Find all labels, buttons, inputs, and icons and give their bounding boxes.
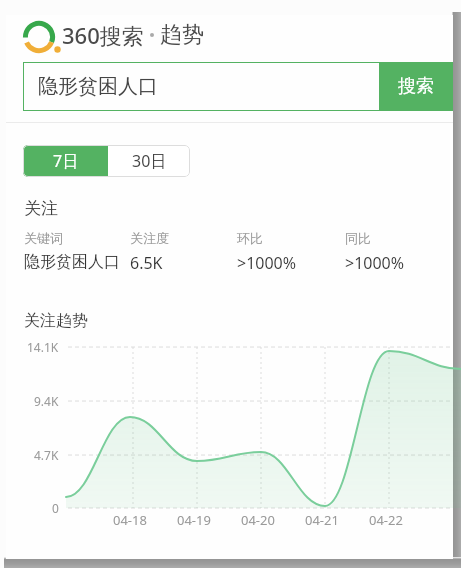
button[interactable]: 7日 (23, 145, 108, 177)
staticText: 04-22 (369, 511, 403, 529)
staticText: 关注趋势 (24, 311, 88, 331)
staticText: 4.7K (34, 447, 59, 463)
staticText: 6.5K (130, 252, 163, 274)
button[interactable]: 搜索 (379, 62, 453, 111)
staticText: 同比 (345, 230, 371, 246)
staticText: 关注 (24, 198, 58, 219)
staticText: 搜索 (398, 75, 434, 98)
staticText: 关键词 (24, 230, 63, 246)
staticText: 04-18 (113, 511, 147, 529)
staticText: 隐形贫困人口 (38, 74, 379, 99)
staticText: 关注度 (130, 230, 169, 246)
staticText: 14.1K (27, 339, 59, 355)
staticText: 趋势 (160, 21, 204, 49)
staticText: 环比 (237, 230, 263, 246)
staticText: 隐形贫困人口 (24, 252, 120, 272)
button[interactable]: 30日 (108, 145, 190, 177)
staticText: 9.4K (34, 393, 59, 409)
staticText: >1000% (345, 252, 405, 274)
staticText: 04-21 (305, 511, 339, 529)
staticText: 30日 (132, 150, 167, 172)
staticText: 0 (52, 500, 59, 516)
staticText: 04-20 (241, 511, 275, 529)
staticText: 04-19 (177, 511, 211, 529)
staticText: >1000% (237, 252, 297, 274)
staticText: 360搜索 (62, 20, 144, 50)
staticText: 7日 (53, 150, 79, 172)
